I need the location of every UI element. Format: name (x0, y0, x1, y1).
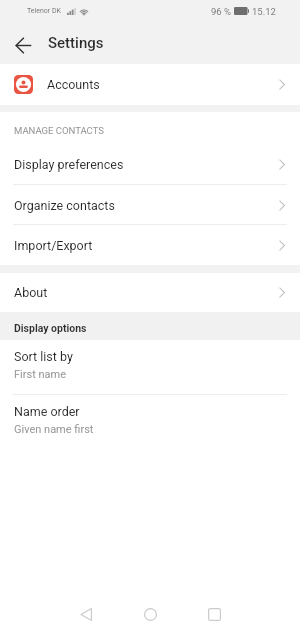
staticText: Import/Export (14, 238, 93, 253)
button[interactable]: Recent apps (182, 592, 246, 633)
staticText: Organize contacts (14, 198, 115, 213)
button[interactable]: About (0, 273, 300, 312)
staticText: MANAGE CONTACTS (14, 125, 104, 136)
button[interactable]: Home (118, 592, 182, 633)
staticText: 15.12 (252, 6, 276, 17)
button[interactable]: Organize contacts (0, 185, 300, 225)
staticText: Display preferences (14, 157, 124, 172)
button[interactable]: Display preferences (0, 143, 300, 185)
button[interactable]: Import/Export (0, 225, 300, 265)
button[interactable]: Back (54, 592, 118, 633)
button[interactable]: Back (0, 22, 46, 64)
staticText: First name (14, 368, 67, 381)
button[interactable]: Accounts (0, 64, 300, 105)
staticText: Name order (14, 404, 80, 419)
staticText: Telenor DK (27, 7, 61, 15)
staticText: Accounts (47, 77, 100, 92)
button[interactable]: Sort list by (0, 340, 300, 395)
staticText: Sort list by (14, 349, 73, 364)
staticText: 96 % (211, 6, 231, 17)
staticText: About (14, 285, 48, 300)
staticText: Display options (14, 322, 87, 334)
staticText: Settings (48, 34, 104, 52)
button[interactable]: Name order (0, 395, 300, 450)
staticText: Given name first (14, 423, 94, 436)
